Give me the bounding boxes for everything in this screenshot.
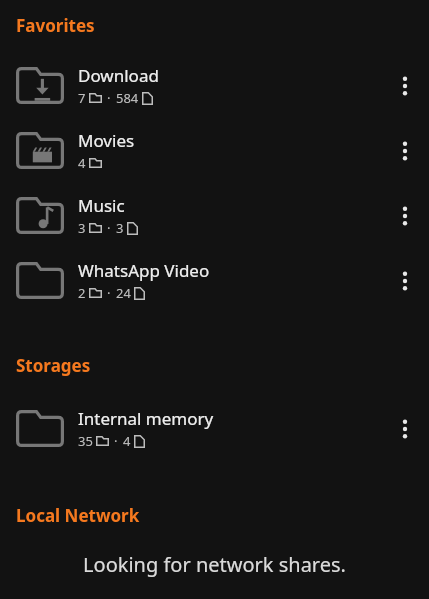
staticText: · (107, 219, 111, 237)
staticText: 3 (78, 219, 86, 237)
staticText: 2 (78, 284, 86, 302)
button[interactable]: More options for Music (381, 192, 429, 240)
button[interactable]: Download (0, 54, 429, 117)
button[interactable]: Movies (0, 119, 429, 182)
staticText: Internal memory (78, 407, 214, 430)
staticText: 4 (78, 154, 86, 172)
staticText: Movies (78, 129, 135, 152)
staticText: · (107, 284, 111, 302)
staticText: · (107, 89, 111, 107)
staticText: Looking for network shares. (83, 551, 346, 578)
staticText: Local Network (16, 504, 140, 527)
button[interactable]: WhatsApp Video (0, 249, 429, 312)
staticText: Storages (16, 354, 91, 377)
staticText: 7 (78, 89, 86, 107)
button[interactable]: More options for Movies (381, 127, 429, 175)
staticText: Music (78, 194, 125, 217)
staticText: WhatsApp Video (78, 259, 210, 282)
staticText: 4 (123, 432, 131, 450)
staticText: 3 (116, 219, 124, 237)
staticText: Download (78, 64, 159, 87)
button[interactable]: More options for Internal memory (381, 405, 429, 453)
staticText: · (114, 432, 118, 450)
staticText: Favorites (16, 14, 95, 37)
button[interactable]: Internal memory (0, 397, 429, 460)
staticText: 35 (78, 432, 93, 450)
button[interactable]: Music (0, 184, 429, 247)
button[interactable]: More options for Download (381, 62, 429, 110)
staticText: 24 (116, 284, 131, 302)
staticText: 584 (116, 89, 139, 107)
button[interactable]: More options for WhatsApp Video (381, 257, 429, 305)
